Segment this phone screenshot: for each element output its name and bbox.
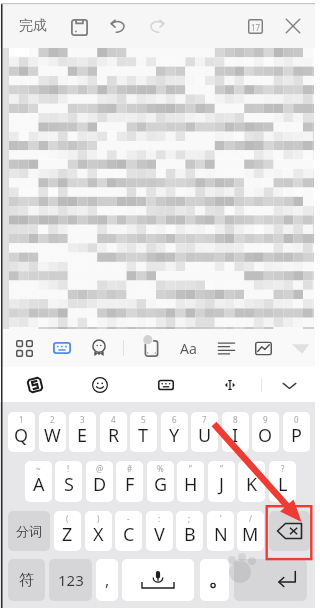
staticText: U [198,423,212,448]
staticText: H [184,472,198,497]
button[interactable]: 分词 [8,511,50,551]
staticText: C [123,522,135,547]
button[interactable]: # [116,461,143,502]
staticText: 2 [50,414,55,425]
button[interactable]: Calendar 17 [238,9,272,43]
staticText: O [258,423,273,448]
button[interactable]: Enter [234,559,307,601]
button[interactable]: 1 [8,412,35,452]
button[interactable]: Image [246,331,280,365]
button[interactable]: : [146,511,173,551]
button[interactable]: 完成 [13,11,53,41]
button[interactable]: Hide keyboard [272,368,306,402]
staticText: D [93,472,107,497]
button[interactable]: ” [208,461,235,502]
staticText: 3 [80,414,85,425]
button[interactable]: 3 [69,412,96,452]
button[interactable]: More [283,331,317,365]
button[interactable]: Keyboard layout [149,368,183,402]
button[interactable]: ( [54,511,81,551]
button[interactable]: Close [276,9,310,43]
staticText: E [77,423,88,448]
staticText: G [154,472,168,497]
staticText: J [219,472,224,497]
button[interactable]: 7 [191,412,218,452]
staticText: A [33,472,45,497]
button[interactable]: - [115,511,142,551]
button[interactable]: Align [209,331,243,365]
button[interactable]: “ [177,461,204,502]
button[interactable]: , [96,559,118,601]
staticText: I [232,423,239,448]
staticText: 1 [19,414,24,425]
staticText: 123 [58,570,84,590]
staticText: 5 [141,414,146,425]
button[interactable]: Period [200,559,229,601]
button[interactable]: Emoji [83,368,117,402]
staticText: P [291,423,302,448]
staticText: S [64,472,74,497]
staticText: Q [14,423,29,448]
button[interactable]: 符 [8,559,45,601]
staticText: W [44,423,61,448]
staticText: ’ [220,513,222,524]
button[interactable]: 4 [100,412,127,452]
button[interactable]: Keyboard [45,331,79,365]
button[interactable]: ’ [207,511,234,551]
button[interactable]: Undo [101,9,135,43]
button[interactable]: Move cursor [213,368,247,402]
button[interactable]: Redo [139,9,173,43]
staticText: Aa [180,339,197,358]
staticText: 0 [294,414,299,425]
staticText: 符 [19,571,34,590]
button[interactable]: ~ [25,461,52,502]
button[interactable]: ; [176,511,203,551]
staticText: N [214,522,228,547]
staticText: R [108,423,120,448]
staticText: “ [189,463,192,474]
button[interactable]: Backspace [269,511,310,551]
button[interactable]: % [147,461,174,502]
button[interactable]: Crop [134,331,168,365]
button[interactable]: Sticker [82,331,116,365]
staticText: % [157,463,164,474]
staticText: T [138,423,149,448]
button[interactable]: ! [55,461,82,502]
staticText: X [93,522,104,547]
staticText: Y [169,423,180,448]
button[interactable]: 5 [130,412,157,452]
button[interactable]: → [238,461,265,502]
button[interactable]: Save [62,10,96,44]
button[interactable]: 8 [222,412,249,452]
staticText: 4 [111,414,116,425]
staticText: B [184,522,196,547]
staticText: 完成 [19,17,47,35]
staticText: ~ [36,463,41,474]
staticText: : [158,513,161,524]
button[interactable]: 123 [49,559,92,601]
button[interactable]: ? [269,461,296,502]
staticText: K [246,472,258,497]
button[interactable]: 9 [252,412,279,452]
staticText: 8 [233,414,238,425]
staticText: V [154,522,165,547]
staticText: 分词 [16,523,42,539]
button[interactable]: Aa [171,331,205,365]
button[interactable]: 6 [161,412,188,452]
staticText: - [127,513,130,524]
button[interactable]: @ [86,461,113,502]
staticText: @ [96,463,104,474]
staticText: 17 [251,22,261,33]
staticText: 6 [172,414,177,425]
staticText: → [248,463,255,472]
button[interactable]: 2 [39,412,66,452]
staticText: 7 [202,414,207,425]
button[interactable]: / [237,511,264,551]
button[interactable]: Sogou input [18,368,52,402]
button[interactable]: ) [85,511,112,551]
button[interactable]: Grid [7,331,41,365]
staticText: ; [188,513,191,524]
button[interactable]: 0 [283,412,310,452]
button[interactable]: Space [122,559,194,601]
staticText: ! [67,463,70,474]
